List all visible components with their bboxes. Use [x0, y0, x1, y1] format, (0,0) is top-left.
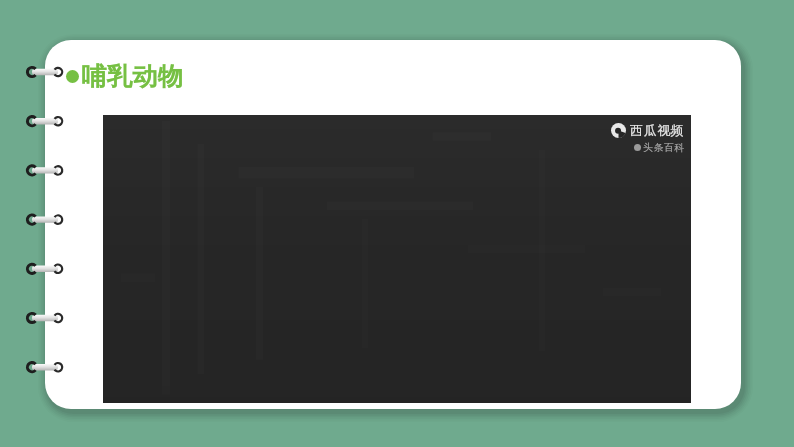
staticText: 哺乳动物 [81, 61, 183, 92]
button[interactable]: 哺乳动物 [64, 59, 185, 94]
button[interactable]: Play video [103, 115, 691, 403]
staticText: 西瓜视频 [630, 122, 685, 138]
staticText: 头条百科 [643, 141, 685, 154]
